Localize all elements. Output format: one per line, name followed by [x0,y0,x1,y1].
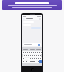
button[interactable]: key [31,54,33,57]
button[interactable]: key [40,51,42,54]
button[interactable]: key [36,51,38,54]
button[interactable]: key [35,54,37,57]
button[interactable]: key [27,57,28,60]
button[interactable] [36,49,41,50]
button[interactable]: key [37,57,39,60]
button[interactable]: ?123 [22,60,25,63]
button[interactable]: key [29,57,31,60]
button[interactable]: key [27,54,29,57]
button[interactable]: Send [23,43,41,46]
button[interactable]: Back [23,18,25,20]
button[interactable]: key [26,51,28,54]
button[interactable]: key [39,60,42,63]
button[interactable]: key [39,54,41,57]
button[interactable]: Back [22,17,42,20]
button[interactable]: key [32,51,34,54]
button[interactable]: key [25,54,27,57]
button[interactable]: key [30,51,32,54]
button[interactable]: key [38,51,40,54]
button[interactable]: key [25,57,26,60]
button[interactable]: key [35,57,37,60]
button[interactable]: key [29,54,31,57]
button[interactable]: key [22,51,24,54]
button[interactable]: space [27,60,37,63]
button[interactable]: key [33,54,35,57]
button[interactable] [30,49,35,50]
button[interactable]: key [34,51,36,54]
button[interactable]: Home [31,68,34,71]
button[interactable] [23,49,28,50]
button[interactable]: Back [21,13,43,72]
button[interactable]: key [23,54,25,57]
button[interactable]: key [26,57,27,60]
button[interactable]: key [39,57,42,60]
button[interactable] [2,0,62,10]
button[interactable]: key [25,60,27,63]
button[interactable]: key [24,51,26,54]
button[interactable]: key [28,57,29,60]
button[interactable]: key [33,57,35,60]
button[interactable]: key [28,51,30,54]
button[interactable]: key [37,54,39,57]
button[interactable]: key [22,57,25,60]
button[interactable]: key [37,60,39,63]
button[interactable]: key [31,57,33,60]
